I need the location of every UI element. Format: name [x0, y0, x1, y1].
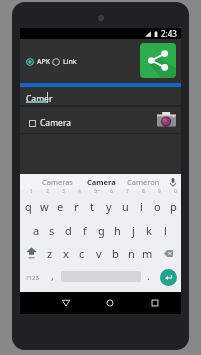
staticText: 2:43 — [161, 28, 177, 39]
staticText: ••• — [96, 188, 101, 193]
staticText: x — [63, 246, 69, 261]
button[interactable]: g — [93, 217, 109, 241]
staticText: 1 — [30, 188, 33, 195]
button[interactable]: Back — [56, 292, 76, 314]
button[interactable]: w — [36, 193, 52, 217]
button[interactable]: Cameron — [123, 174, 163, 190]
staticText: y — [106, 199, 112, 214]
staticText: h — [114, 223, 121, 238]
staticText: Camera — [87, 177, 116, 187]
button[interactable]: t — [84, 193, 100, 217]
button[interactable]: b — [107, 241, 123, 265]
staticText: b — [112, 246, 119, 261]
staticText: . — [147, 269, 150, 283]
staticText: l — [164, 223, 167, 238]
button[interactable]: a — [28, 217, 44, 241]
button[interactable]: z — [42, 241, 58, 265]
staticText: o — [154, 199, 161, 214]
button[interactable]: ?123 — [20, 265, 44, 291]
staticText: u — [122, 199, 129, 214]
staticText: i — [140, 199, 143, 214]
staticText: 4 — [78, 188, 81, 195]
button[interactable]: Cameras — [37, 174, 77, 190]
button[interactable]: Backspace — [156, 241, 181, 265]
button[interactable]: n — [123, 241, 139, 265]
staticText: j — [132, 223, 135, 238]
staticText: r — [74, 199, 79, 214]
button[interactable]: h — [109, 217, 125, 241]
staticText: w — [40, 199, 49, 214]
button[interactable]: o — [149, 193, 165, 217]
button[interactable]: r — [68, 193, 84, 217]
staticText: n — [128, 246, 135, 261]
staticText: 5 — [94, 188, 97, 195]
staticText: 6 — [110, 188, 113, 195]
button[interactable]: Recents — [145, 292, 165, 314]
staticText: 9 — [158, 188, 161, 195]
button[interactable]: x — [58, 241, 74, 265]
button[interactable]: Share — [140, 43, 176, 78]
button[interactable]: Home — [100, 292, 120, 314]
button[interactable]: u — [117, 193, 133, 217]
button[interactable]: Shift — [20, 241, 42, 265]
staticText: z — [47, 246, 53, 261]
button[interactable]: m — [139, 241, 155, 265]
button[interactable]: k — [141, 217, 157, 241]
button[interactable]: p — [165, 193, 181, 217]
button[interactable]: d — [60, 217, 76, 241]
staticText: Link — [63, 57, 77, 67]
button[interactable]: Enter — [160, 269, 177, 286]
button[interactable]: j — [125, 217, 141, 241]
staticText: e — [57, 199, 64, 214]
button[interactable]: . — [141, 265, 155, 291]
staticText: , — [51, 269, 54, 283]
staticText: d — [65, 223, 72, 238]
staticText: s — [49, 223, 55, 238]
staticText: m — [142, 246, 153, 261]
button[interactable]: f — [77, 217, 93, 241]
staticText: k — [146, 223, 152, 238]
staticText: Cameras — [42, 177, 73, 187]
button[interactable]: e — [52, 193, 68, 217]
staticText: 8 — [142, 188, 145, 195]
staticText: g — [98, 223, 105, 238]
button[interactable]: c — [74, 241, 90, 265]
button[interactable]: v — [91, 241, 107, 265]
button[interactable]: i — [133, 193, 149, 217]
staticText: v — [96, 246, 102, 261]
staticText: 2 — [46, 188, 49, 195]
staticText: APK — [37, 57, 51, 67]
button[interactable]: l — [157, 217, 173, 241]
staticText: f — [83, 223, 87, 238]
staticText: 0 — [174, 188, 177, 195]
staticText: Cameron — [127, 177, 160, 187]
button[interactable]: s — [44, 217, 60, 241]
button[interactable]: Link — [50, 54, 79, 70]
staticText: Camer — [26, 93, 53, 105]
button[interactable]: q — [20, 193, 36, 217]
staticText: ?123 — [26, 274, 39, 282]
staticText: p — [170, 199, 177, 214]
staticText: c — [79, 246, 85, 261]
button[interactable]: , — [44, 265, 60, 291]
staticText: Camera — [40, 117, 71, 129]
staticText: q — [25, 199, 32, 214]
button[interactable]: Camera — [81, 174, 121, 190]
staticText: 7 — [126, 188, 129, 195]
button[interactable]: Camera — [20, 107, 181, 133]
button[interactable]: y — [101, 193, 117, 217]
button[interactable]: APK — [24, 54, 53, 70]
staticText: t — [90, 199, 94, 214]
staticText: a — [33, 223, 40, 238]
staticText: 3 — [62, 188, 65, 195]
button[interactable]: Voice input — [165, 174, 181, 190]
